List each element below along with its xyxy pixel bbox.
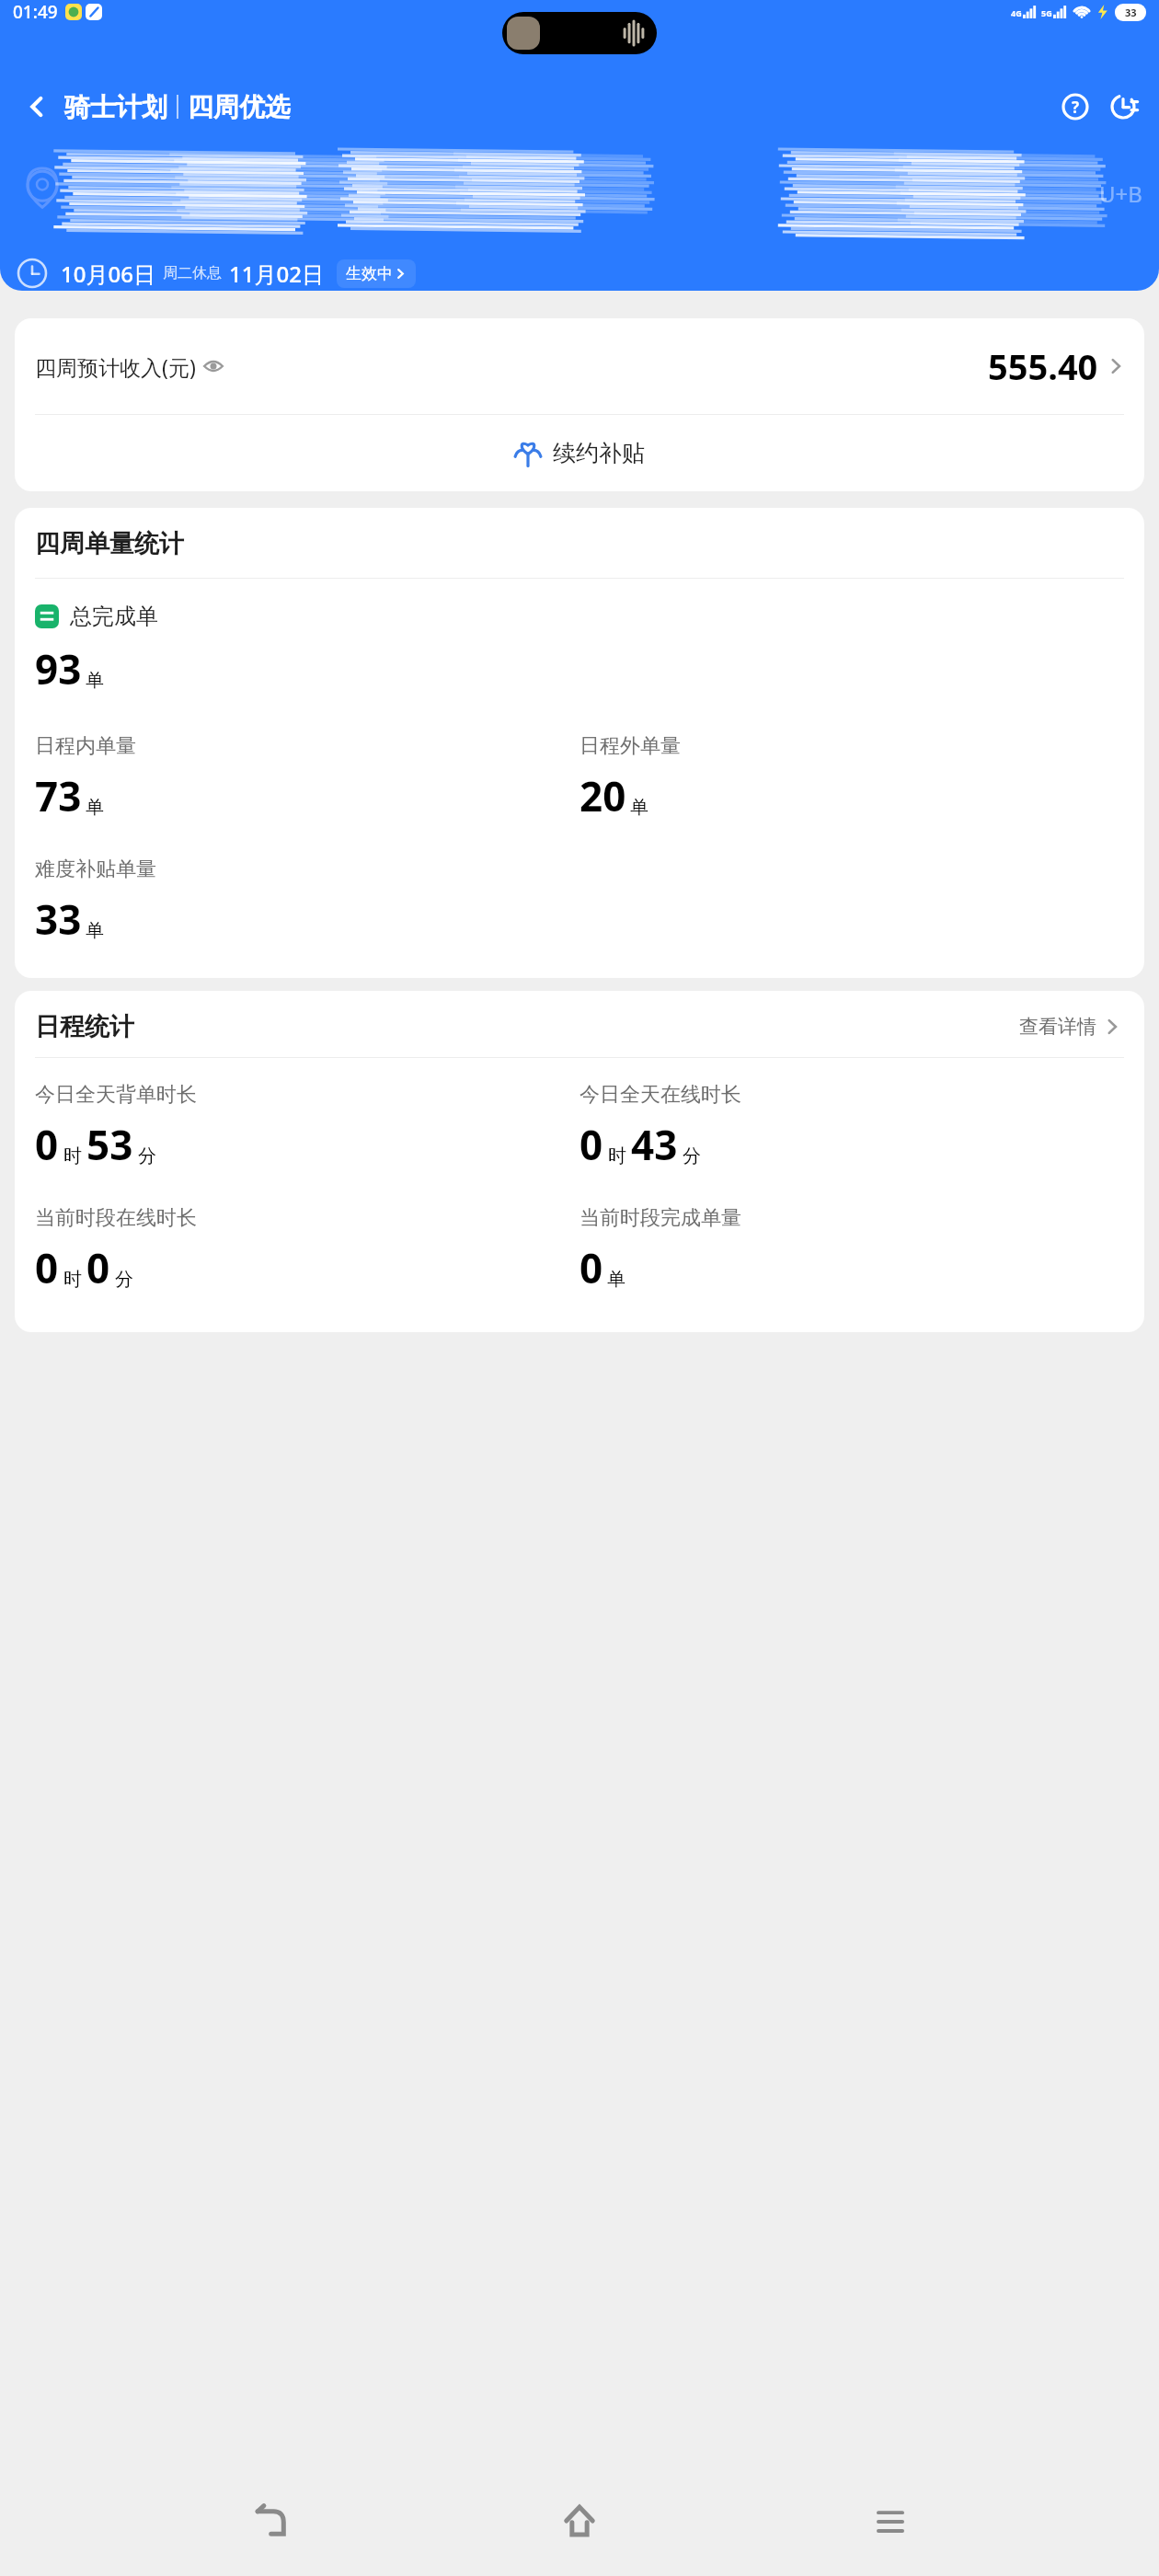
- staticText: 5G: [1041, 7, 1052, 18]
- button[interactable]: Back: [228, 2479, 311, 2562]
- button[interactable]: Recents: [849, 2479, 932, 2562]
- staticText: 0: [86, 1240, 110, 1295]
- staticText: 单: [86, 919, 104, 942]
- staticText: 0: [35, 1117, 59, 1172]
- staticText: 单: [630, 796, 648, 819]
- staticText: 总完成单: [70, 603, 158, 630]
- staticText: 分: [115, 1268, 133, 1291]
- staticText: 0: [579, 1117, 603, 1172]
- button[interactable]: 四周预计收入(元): [15, 318, 1144, 414]
- staticText: 四周单量统计: [35, 528, 184, 559]
- staticText: U+B: [1099, 178, 1142, 209]
- button[interactable]: 生效中: [337, 259, 416, 288]
- staticText: 日程统计: [35, 1011, 134, 1042]
- button[interactable]: Back: [15, 85, 59, 129]
- staticText: 今日全天背单时长: [35, 1082, 197, 1108]
- staticText: 日程内单量: [35, 733, 136, 759]
- staticText: 11月02日: [229, 259, 324, 289]
- staticText: ?: [1072, 97, 1080, 118]
- staticText: 单: [86, 796, 104, 819]
- staticText: 33: [1125, 6, 1137, 19]
- staticText: 43: [631, 1117, 678, 1172]
- staticText: 四周预计收入(元): [35, 352, 196, 381]
- staticText: 查看详情: [1019, 1015, 1096, 1039]
- button[interactable]: 查看详情: [1016, 1011, 1124, 1042]
- staticText: 当前时段完成单量: [579, 1205, 741, 1231]
- staticText: 骑士计划: [64, 91, 167, 123]
- staticText: 时: [63, 1144, 82, 1167]
- staticText: 01:49: [13, 0, 58, 24]
- button[interactable]: Help: [1054, 86, 1096, 128]
- staticText: 续约补贴: [553, 439, 645, 467]
- staticText: 0: [35, 1240, 59, 1295]
- staticText: 当前时段在线时长: [35, 1205, 197, 1231]
- staticText: 20: [579, 768, 626, 823]
- staticText: 周二休息: [163, 264, 222, 282]
- staticText: 33: [35, 891, 82, 947]
- button[interactable]: History: [1102, 86, 1144, 128]
- staticText: 生效中: [346, 264, 393, 283]
- staticText: 555.40: [988, 342, 1098, 390]
- staticText: 0: [579, 1240, 603, 1295]
- staticText: 分: [138, 1144, 156, 1167]
- staticText: 四周优选: [188, 91, 291, 123]
- staticText: 73: [35, 768, 82, 823]
- staticText: 今日全天在线时长: [579, 1082, 741, 1108]
- staticText: 分: [683, 1144, 701, 1167]
- staticText: 时: [608, 1144, 626, 1167]
- staticText: 53: [86, 1117, 133, 1172]
- button[interactable]: Home: [538, 2479, 621, 2562]
- staticText: 4G: [1011, 7, 1022, 18]
- staticText: 93: [35, 641, 82, 696]
- staticText: 时: [63, 1268, 82, 1291]
- staticText: 10月06日: [61, 259, 155, 289]
- staticText: 难度补贴单量: [35, 857, 156, 882]
- staticText: 单: [86, 669, 104, 692]
- staticText: 日程外单量: [579, 733, 681, 759]
- staticText: 单: [607, 1268, 625, 1291]
- button[interactable]: 续约补贴: [15, 415, 1144, 491]
